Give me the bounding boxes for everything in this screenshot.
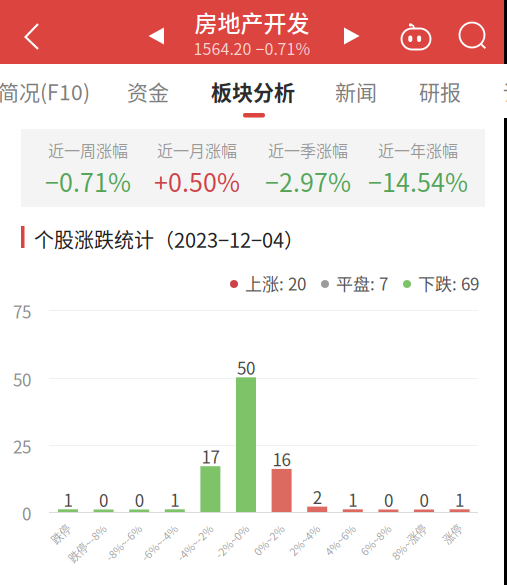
button[interactable]: 简况(F10) xyxy=(0,64,92,118)
staticText: 1 xyxy=(348,487,357,512)
staticText: 跌停 xyxy=(58,546,80,562)
staticText: 1564.20 −0.71% xyxy=(193,36,310,60)
button[interactable]: 讨论 xyxy=(476,64,507,118)
button[interactable]: Search xyxy=(449,4,497,68)
button[interactable]: Previous sector xyxy=(133,4,179,68)
staticText: 25 xyxy=(13,434,31,458)
staticText: +0.50% xyxy=(154,163,240,199)
staticText: 上涨: 20 xyxy=(245,271,306,295)
button[interactable]: 板块分析 xyxy=(205,64,301,118)
staticText: 50 xyxy=(13,367,31,391)
button[interactable]: 资金 xyxy=(100,64,196,118)
button[interactable]: AI assistant xyxy=(392,4,440,68)
staticText: 17 xyxy=(201,444,219,468)
staticText: 0 xyxy=(135,487,144,512)
staticText: 板块分析 xyxy=(211,76,295,106)
staticText: -2%~0% xyxy=(216,546,258,562)
staticText: -6%~-4% xyxy=(141,546,187,562)
staticText: 讨论 xyxy=(503,76,507,106)
staticText: 50 xyxy=(237,355,255,380)
staticText: 8%~涨停 xyxy=(392,546,436,562)
staticText: 0 xyxy=(419,487,428,512)
staticText: 1 xyxy=(63,487,72,512)
staticText: 6%~8% xyxy=(362,546,400,562)
staticText: 2%~4% xyxy=(291,546,329,562)
button[interactable]: Back xyxy=(2,5,62,69)
staticText: 0 xyxy=(99,487,108,512)
staticText: 跌停~-8% xyxy=(68,546,116,562)
staticText: 近一月涨幅 xyxy=(157,138,237,162)
staticText: 下跌: 69 xyxy=(418,271,479,295)
staticText: 0 xyxy=(22,501,31,525)
staticText: −14.54% xyxy=(368,163,468,199)
staticText: -8%~-6% xyxy=(105,546,151,562)
staticText: 平盘: 7 xyxy=(336,271,388,295)
staticText: −2.97% xyxy=(265,163,351,199)
button[interactable]: Next sector xyxy=(329,4,375,68)
staticText: 2 xyxy=(313,484,322,509)
staticText: 资金 xyxy=(127,76,169,106)
staticText: -4%~-2% xyxy=(176,546,222,562)
staticText: 简况(F10) xyxy=(0,76,90,106)
staticText: 近一年涨幅 xyxy=(378,138,458,162)
staticText: 0 xyxy=(384,487,393,512)
staticText: 16 xyxy=(273,447,291,471)
staticText: 75 xyxy=(13,299,31,323)
staticText: −0.71% xyxy=(45,163,131,199)
staticText: 1 xyxy=(170,487,179,512)
staticText: 近一季涨幅 xyxy=(268,138,348,162)
staticText: 1 xyxy=(455,487,464,512)
staticText: 研报 xyxy=(419,76,461,106)
staticText: 个股涨跌统计（2023−12−04） xyxy=(34,224,304,253)
staticText: 0%~2% xyxy=(256,546,294,562)
staticText: 房地产开发 xyxy=(194,5,309,39)
button[interactable]: 房地产开发 xyxy=(177,0,327,64)
staticText: 新闻 xyxy=(335,76,377,106)
button[interactable]: 新闻 xyxy=(308,64,404,118)
staticText: 近一周涨幅 xyxy=(48,138,128,162)
staticText: 4%~6% xyxy=(327,546,365,562)
button[interactable]: 研报 xyxy=(392,64,488,118)
